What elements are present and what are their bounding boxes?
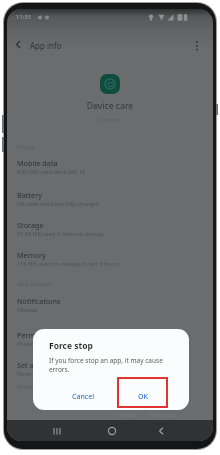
button[interactable]: Permissions (17, 330, 207, 347)
staticText: 118 MB used on average in last 3 hours (17, 260, 119, 267)
staticText: Set as default (17, 360, 64, 370)
button[interactable]: Battery (17, 190, 207, 207)
staticText: 5% used since last fully charged (17, 200, 99, 207)
staticText: Uninstall Force stop (117, 412, 176, 419)
staticText: 11:51 (16, 13, 32, 21)
button[interactable]: Mobile data (17, 158, 207, 175)
button[interactable]: App info (30, 40, 62, 51)
staticText: Phone and Storage (17, 340, 67, 347)
staticText: 4.07 MB used since Feb 18 (17, 168, 85, 175)
button[interactable]: Storage (17, 220, 207, 237)
staticText: Usage (17, 143, 35, 151)
staticText: Storage (17, 220, 44, 230)
staticText: Force stop (49, 340, 93, 352)
staticText: If you force stop an app, it may cause e… (49, 356, 163, 374)
button[interactable]: Set as default (17, 360, 207, 377)
staticText: Notifications (17, 296, 61, 306)
button[interactable]: Memory (17, 250, 207, 267)
button[interactable]: OK (118, 387, 168, 407)
staticText: Battery (17, 190, 42, 200)
staticText: Allowed (17, 306, 38, 313)
staticText: Memory (17, 250, 46, 260)
staticText: None set as default (17, 370, 68, 377)
button[interactable]: Cancel (58, 387, 108, 407)
button[interactable]: Notifications (17, 296, 207, 313)
staticText: OK (138, 392, 148, 402)
staticText: Alarms & reminders (17, 383, 74, 391)
staticText: 97.34 MB used in internal storage (17, 230, 104, 237)
staticText: Mobile data (17, 158, 58, 168)
staticText: App settings (17, 280, 53, 288)
staticText: Permissions (17, 330, 59, 340)
staticText: Cancel (72, 392, 95, 402)
staticText: Device care (7, 100, 213, 112)
